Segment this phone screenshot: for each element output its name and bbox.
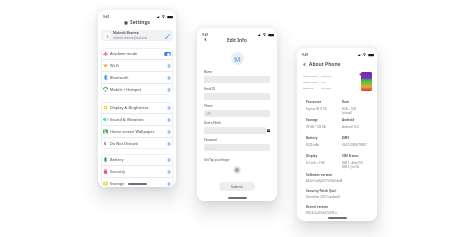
- button[interactable]: Mobile / Hotspot: [101, 84, 173, 95]
- staticText: Edit Info: [227, 37, 247, 43]
- staticText: Security Patch (Jun): [306, 189, 337, 193]
- button[interactable]: Submit: [219, 182, 255, 191]
- button[interactable]: Edit profile: [163, 32, 171, 40]
- staticText: 9:41: [302, 53, 309, 57]
- staticText: Settings: [130, 19, 151, 26]
- staticText: 634/123456/78987: [342, 143, 367, 147]
- staticText: About Phone: [309, 61, 341, 68]
- staticText: Display & Brightness: [110, 105, 166, 110]
- staticText: 6.5 inch + FHD: [306, 161, 325, 165]
- button[interactable]: Fingerprint scanner: [233, 166, 241, 174]
- staticText: Kernel version: [306, 205, 329, 209]
- staticText: • • • • • •: [206, 146, 215, 149]
- staticText: Do Not Disturb: [110, 141, 166, 146]
- button[interactable]: +91: [204, 110, 270, 117]
- button[interactable]: Back: [203, 37, 208, 42]
- button[interactable]: Battery: [101, 154, 173, 165]
- staticText: mukesh.sharma@mail.com: [113, 36, 148, 40]
- staticText: Sound & Vibration: [110, 117, 166, 122]
- button[interactable]: Mukesh Sharma: [101, 30, 173, 41]
- staticText: 6GB + 1GB (virtual): [342, 107, 356, 115]
- other: Pick date: [267, 129, 270, 132]
- staticText: SIM 1 : Airtel 5G SIM 2 : Jio 5G: [342, 161, 363, 169]
- staticText: Battery: [306, 136, 318, 140]
- staticText: Phone: [204, 104, 213, 108]
- staticText: Processor: [306, 100, 322, 104]
- staticText: M: [234, 54, 241, 64]
- staticText: Airplane mode: [110, 51, 163, 56]
- staticText: A52: [321, 80, 326, 83]
- button[interactable]: Home screen Wallpaper: [101, 126, 173, 137]
- staticText: Mukesh Sharma: [113, 31, 139, 35]
- staticText: Email ID: [204, 87, 216, 91]
- staticText: A52-d001: [321, 86, 332, 89]
- button[interactable]: Bluetooth: [101, 72, 173, 83]
- staticText: Bluetooth: [110, 75, 166, 80]
- staticText: Date of Birth: [204, 121, 222, 125]
- staticText: Mobile / Hotspot: [110, 87, 166, 92]
- staticText: Password: [204, 138, 217, 142]
- staticText: Name: [204, 70, 213, 74]
- staticText: Set/Tap your finger: [204, 158, 230, 162]
- staticText: 9:41: [202, 33, 209, 37]
- staticText: Samsung: [321, 74, 332, 77]
- staticText: Device Id: [303, 86, 321, 89]
- button[interactable]: Do Not Disturb: [101, 138, 173, 149]
- staticText: Battery: [110, 157, 166, 162]
- staticText: Storage: [110, 181, 166, 186]
- button[interactable]: Back: [302, 62, 307, 67]
- staticText: Software version: [306, 173, 333, 177]
- staticText: RQ1A.0u/6/hb/C5/t78-u: [306, 211, 337, 215]
- staticText: 9:41: [103, 15, 110, 19]
- button[interactable]: Wi-Fi: [101, 60, 173, 71]
- button[interactable]: Airplane mode: [101, 48, 173, 59]
- staticText: Submit: [231, 184, 243, 189]
- staticText: A52xf1ud0y0017r0lVzUAaf8: [306, 179, 343, 183]
- staticText: Home screen Wallpaper: [110, 129, 166, 134]
- staticText: Model Name: [303, 80, 321, 83]
- staticText: Display: [306, 154, 318, 158]
- staticText: Storage: [306, 118, 318, 122]
- button[interactable]: Storage: [101, 178, 173, 187]
- button[interactable]: Display & Brightness: [101, 102, 173, 113]
- staticText: Device Name: [303, 74, 321, 77]
- button[interactable]: Sound & Vibration: [101, 114, 173, 125]
- staticText: Android: [342, 118, 355, 122]
- staticText: Wi-Fi: [110, 63, 166, 68]
- staticText: December 2021 (updated): [306, 195, 341, 199]
- staticText: 78 GB / 128 GB: [306, 125, 326, 129]
- staticText: 5020 mAh: [306, 143, 320, 147]
- staticText: Ram: [342, 100, 349, 104]
- staticText: +91: [206, 112, 211, 116]
- button[interactable]: Security: [101, 166, 173, 177]
- staticText: Android 12.0: [342, 125, 359, 129]
- staticText: IMEI: [342, 136, 350, 140]
- staticText: SIM Status: [342, 154, 359, 158]
- staticText: Security: [110, 169, 166, 174]
- staticText: Exynos 9611 5G: [306, 107, 327, 111]
